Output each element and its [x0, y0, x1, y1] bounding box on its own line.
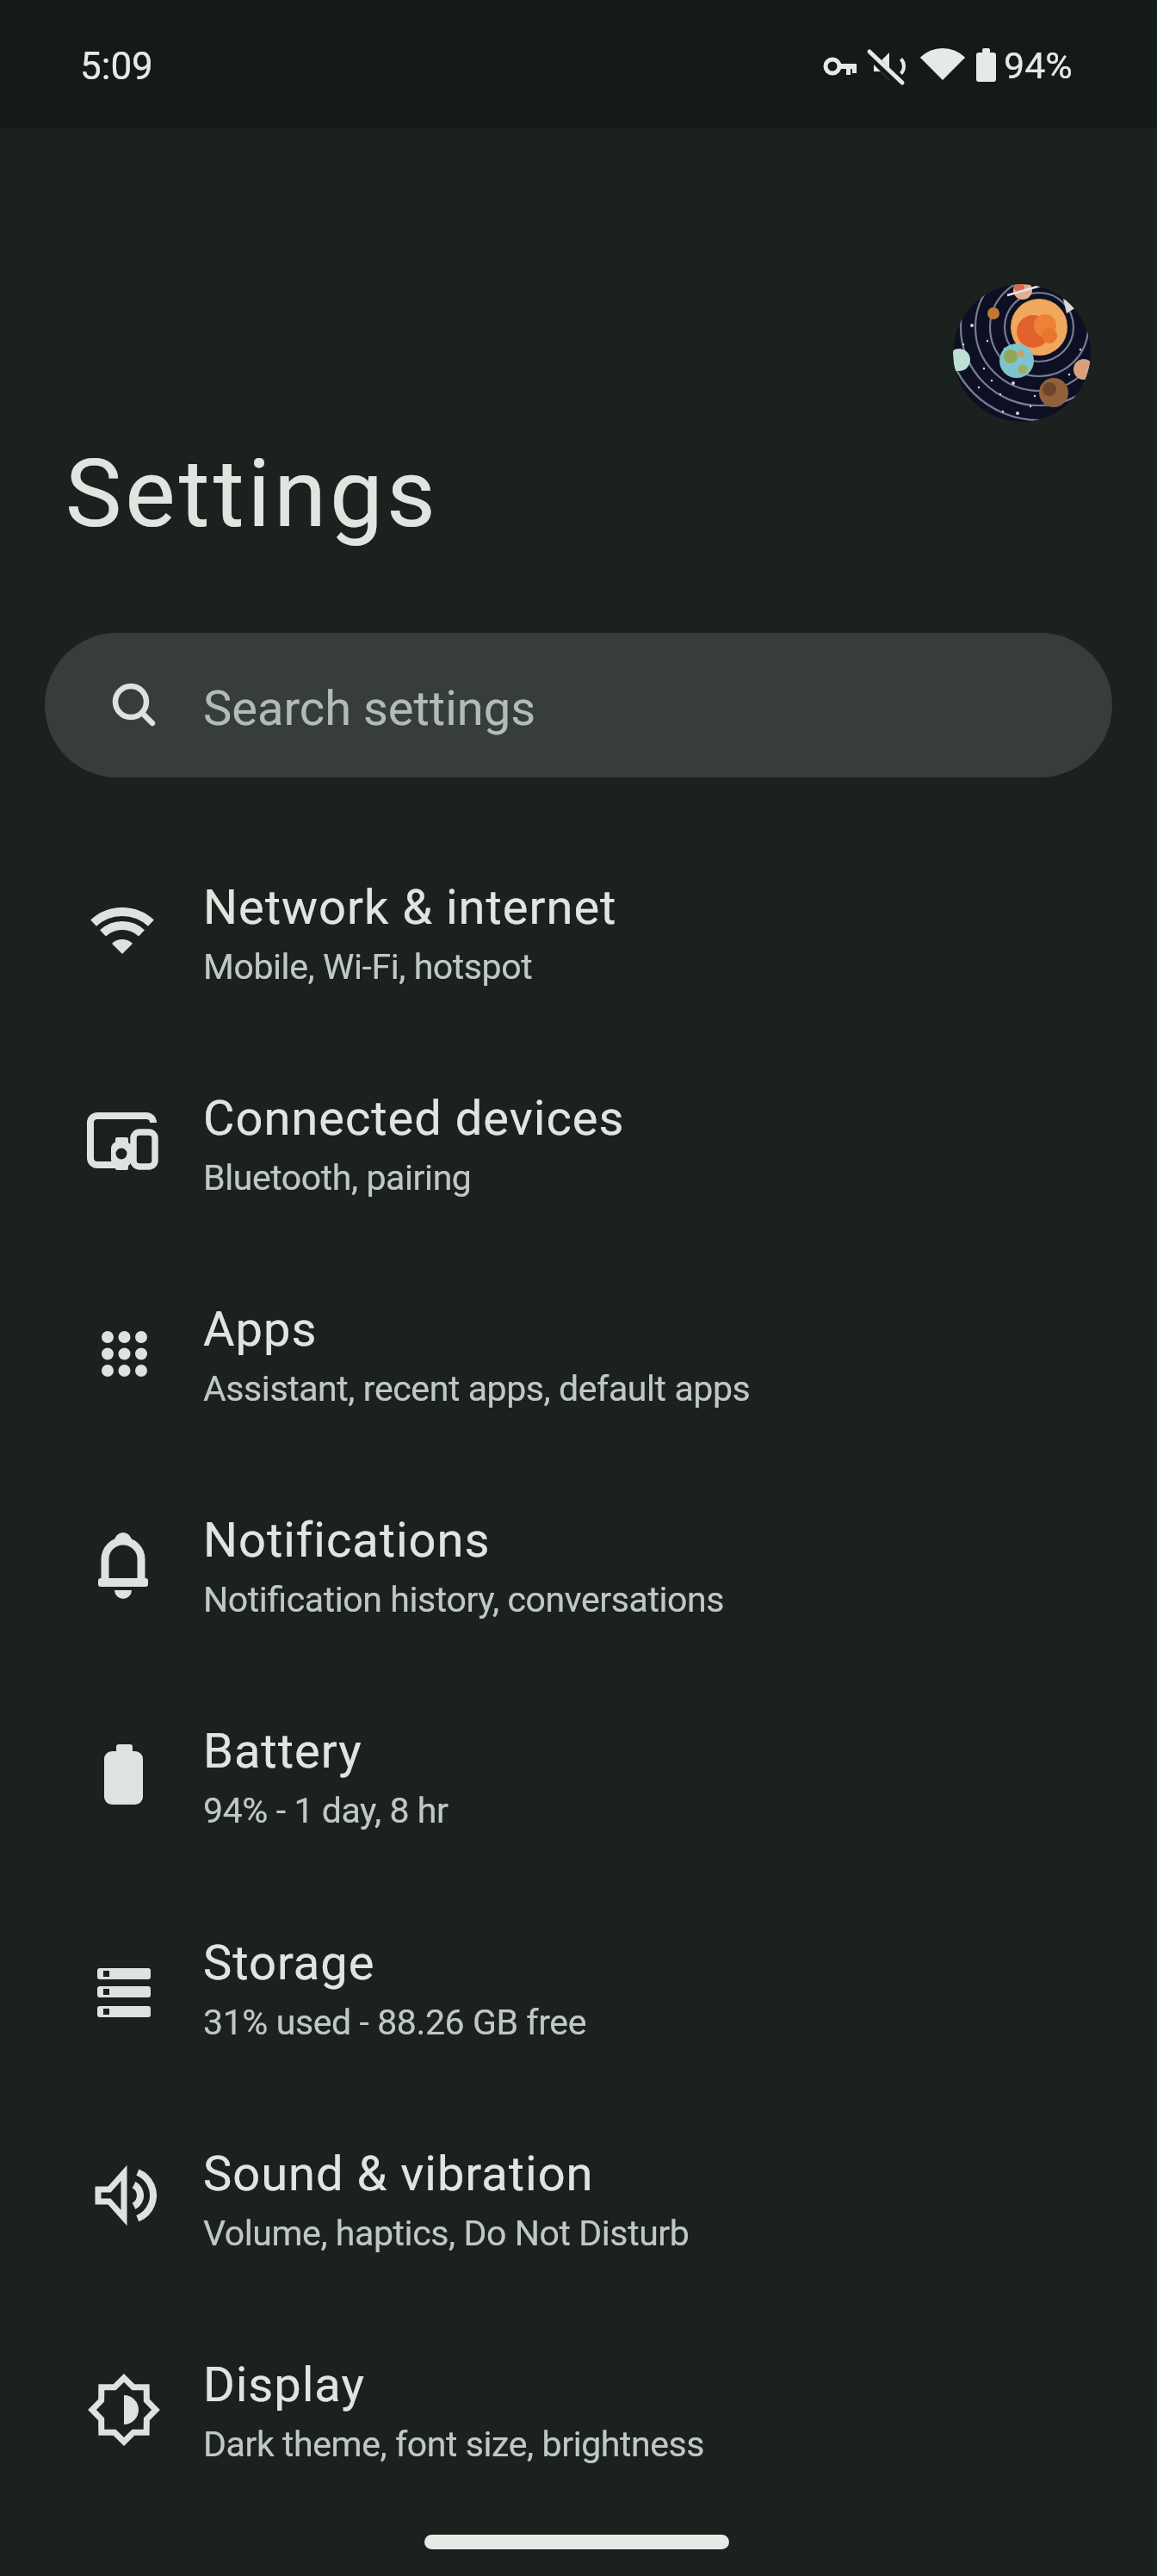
button[interactable]: Apps	[0, 1252, 1157, 1463]
staticText: Bluetooth, pairing	[203, 1157, 472, 1198]
staticText: Dark theme, font size, brightness	[203, 2424, 705, 2465]
button[interactable]: Sound & vibration	[0, 2096, 1157, 2307]
staticText: Notifications	[203, 1512, 491, 1569]
staticText: Settings	[65, 438, 439, 549]
staticText: Volume, haptics, Do Not Disturb	[203, 2213, 690, 2254]
staticText: 94% - 1 day, 8 hr	[203, 1790, 449, 1831]
button[interactable]: Battery	[0, 1674, 1157, 1885]
button[interactable]: Notifications	[0, 1463, 1157, 1674]
staticText: 5:09	[80, 44, 153, 89]
staticText: 94%	[1004, 44, 1073, 87]
staticText: Display	[203, 2356, 365, 2413]
staticText: 31% used - 88.26 GB free	[203, 2002, 587, 2043]
button[interactable]: Network & internet	[0, 830, 1157, 1041]
staticText: Mobile, Wi-Fi, hotspot	[203, 946, 533, 988]
staticText: Apps	[203, 1301, 318, 1358]
button[interactable]: Search settings	[45, 633, 1112, 777]
staticText: Search settings	[203, 680, 536, 737]
staticText: Battery	[203, 1723, 362, 1780]
staticText: Connected devices	[203, 1090, 625, 1147]
button[interactable]	[953, 284, 1091, 422]
button[interactable]: Connected devices	[0, 1041, 1157, 1252]
staticText: Sound & vibration	[203, 2146, 594, 2202]
button[interactable]: Display	[0, 2307, 1157, 2518]
button[interactable]: Storage	[0, 1886, 1157, 2096]
staticText: Notification history, conversations	[203, 1579, 725, 1620]
staticText: Network & internet	[203, 879, 617, 936]
staticText: Storage	[203, 1935, 375, 1991]
staticText: Assistant, recent apps, default apps	[203, 1368, 751, 1409]
